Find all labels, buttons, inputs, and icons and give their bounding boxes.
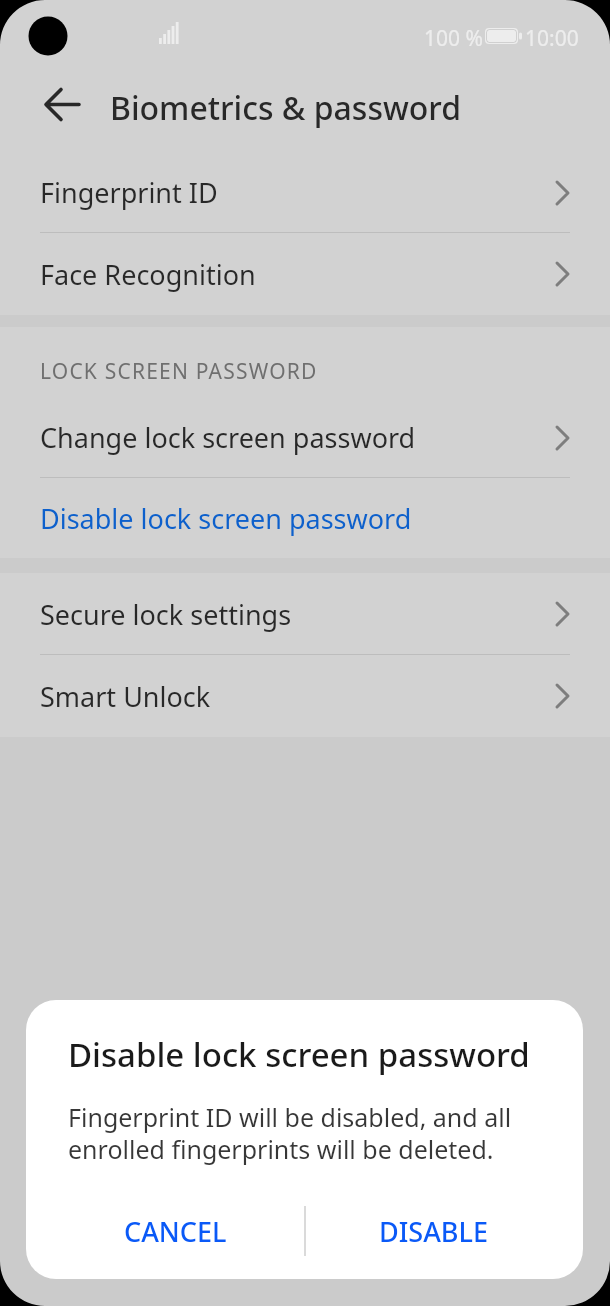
staticText: CANCEL bbox=[124, 1213, 227, 1250]
staticText: 10:00 bbox=[525, 24, 579, 53]
staticText: Fingerprint ID bbox=[40, 174, 218, 211]
staticText: Biometrics & password bbox=[110, 86, 462, 130]
staticText: 100 % bbox=[424, 24, 483, 53]
staticText: Change lock screen password bbox=[40, 419, 416, 456]
button[interactable]: DISABLE bbox=[304, 1199, 563, 1263]
button[interactable]: Fingerprint ID bbox=[0, 152, 610, 233]
staticText: DISABLE bbox=[379, 1213, 488, 1250]
button[interactable]: Secure lock settings bbox=[0, 573, 610, 655]
button[interactable]: Change lock screen password bbox=[0, 397, 610, 478]
staticText: Secure lock settings bbox=[40, 596, 292, 633]
staticText: Face Recognition bbox=[40, 256, 256, 293]
staticText: Fingerprint ID will be disabled, and all… bbox=[68, 1100, 512, 1166]
staticText: LOCK SCREEN PASSWORD bbox=[40, 357, 318, 386]
button[interactable] bbox=[36, 84, 88, 128]
staticText: Disable lock screen password bbox=[68, 1032, 530, 1077]
button[interactable]: Disable lock screen password bbox=[0, 478, 610, 558]
button[interactable]: Smart Unlock bbox=[0, 655, 610, 737]
staticText: Smart Unlock bbox=[40, 678, 211, 715]
button[interactable]: CANCEL bbox=[46, 1199, 304, 1263]
staticText: Disable lock screen password bbox=[40, 500, 412, 537]
button[interactable]: Face Recognition bbox=[0, 233, 610, 315]
